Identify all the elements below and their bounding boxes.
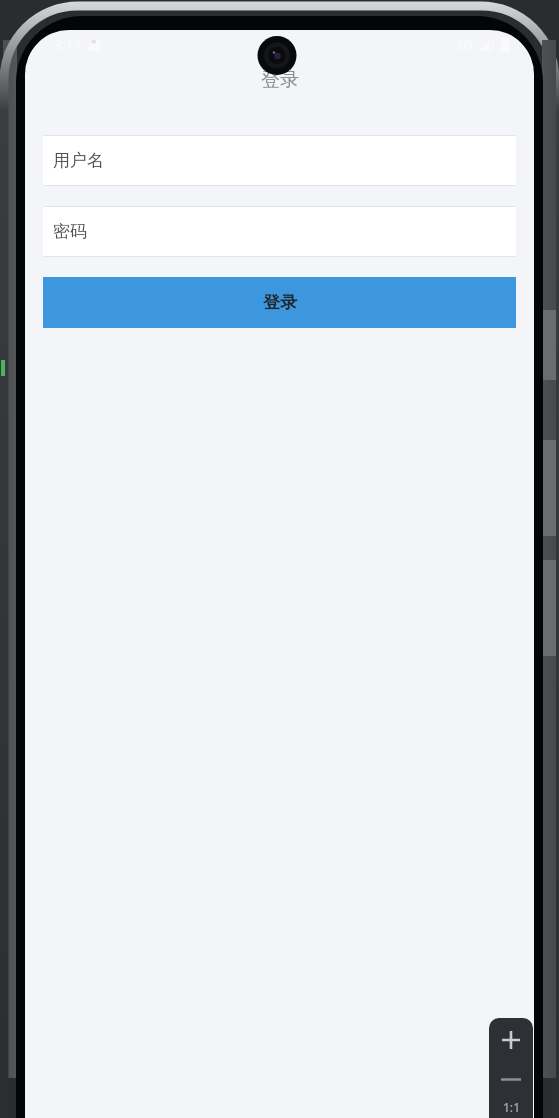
button[interactable]: Zoom out <box>489 1062 533 1096</box>
button[interactable]: 1:1 <box>489 1096 533 1118</box>
staticText: 登录 <box>263 292 297 313</box>
staticText: 用户名 <box>53 150 104 171</box>
button[interactable]: Zoom in <box>489 1018 533 1062</box>
button[interactable]: 密码 <box>43 206 516 257</box>
staticText: 登录 <box>261 68 299 92</box>
staticText: 1:1 <box>503 1099 520 1115</box>
button[interactable]: 用户名 <box>43 135 516 186</box>
staticText: 密码 <box>53 221 87 242</box>
button[interactable]: 登录 <box>43 277 516 328</box>
